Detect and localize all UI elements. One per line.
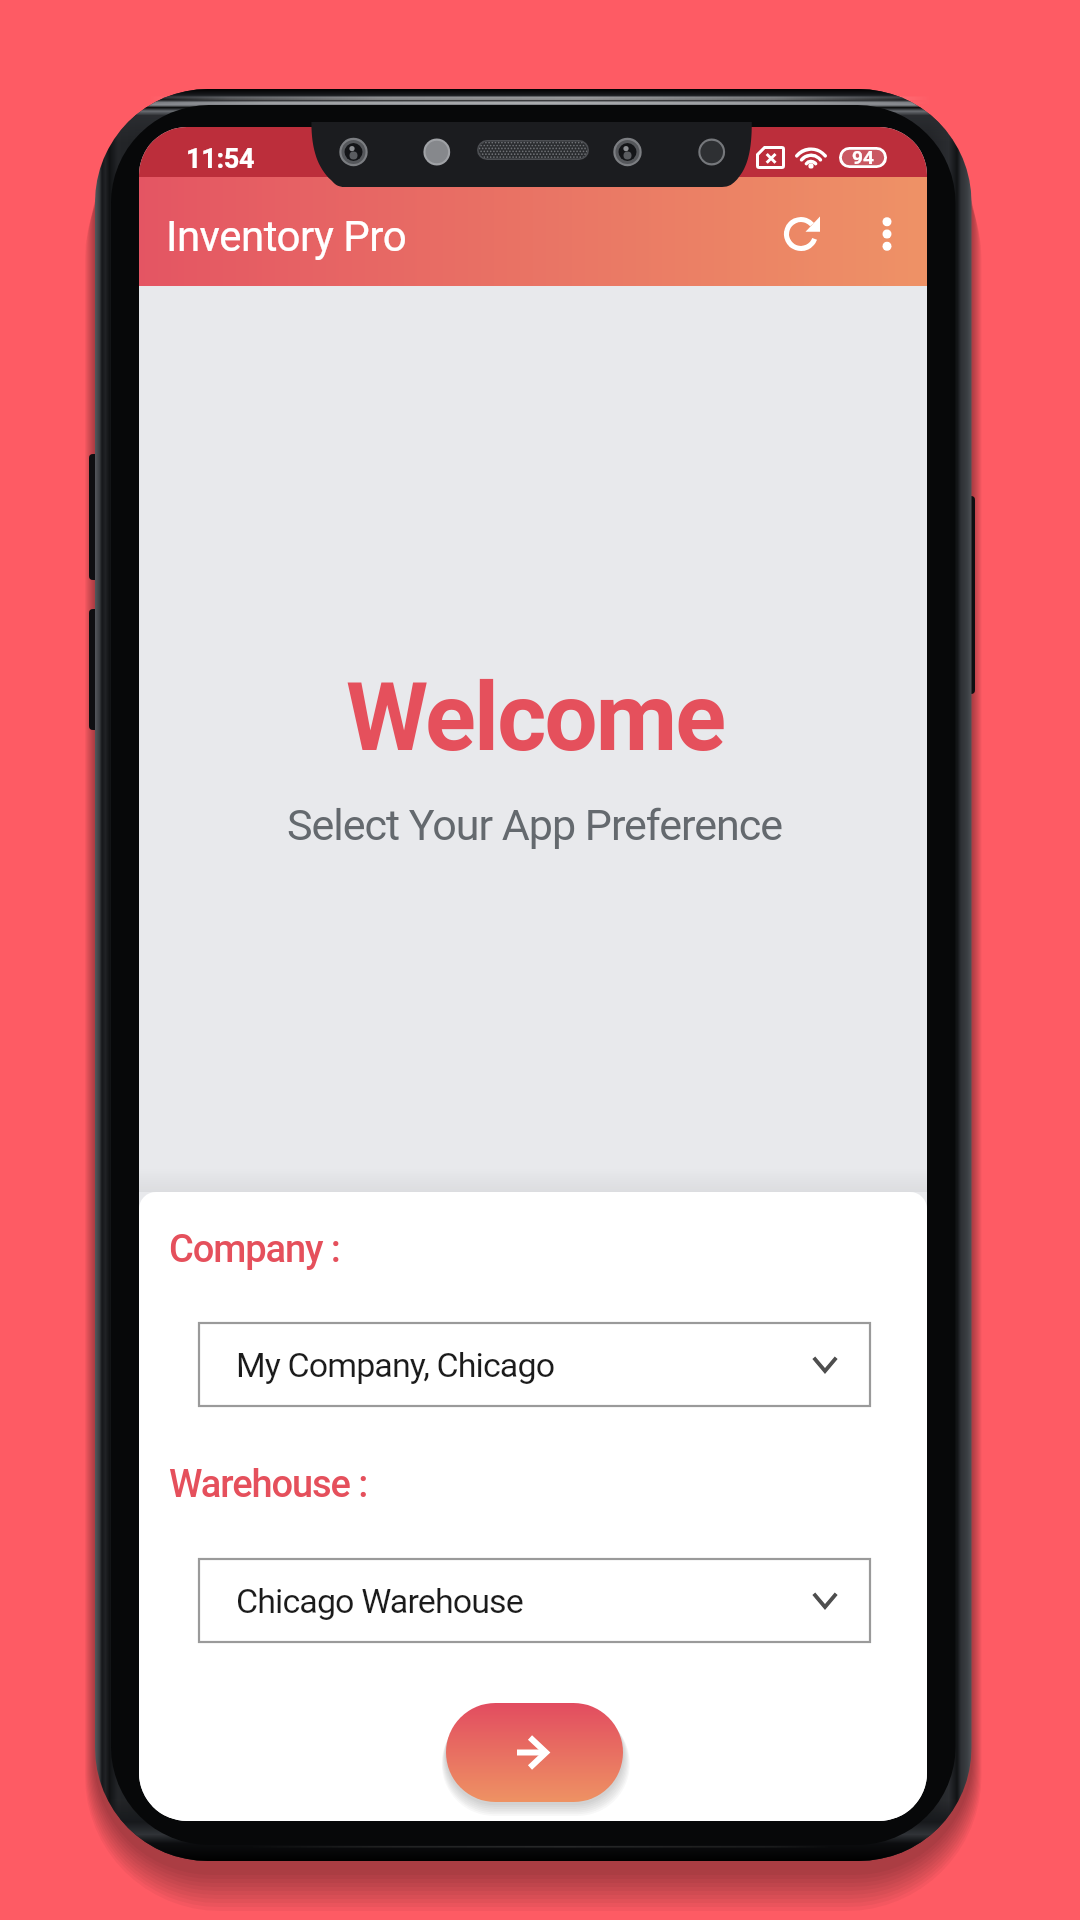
staticText: Welcome xyxy=(346,663,725,773)
staticText: Inventory Pro xyxy=(166,212,407,261)
staticText: Select Your App Preference xyxy=(287,800,783,850)
staticText: Company : xyxy=(169,1227,340,1272)
button[interactable]: My Company, Chicago xyxy=(199,1323,870,1406)
button[interactable]: Refresh xyxy=(762,191,848,277)
staticText: Chicago Warehouse xyxy=(236,1581,523,1621)
staticText: 11:54 xyxy=(186,143,255,175)
staticText: 94 xyxy=(852,146,874,167)
button[interactable]: Chicago Warehouse xyxy=(199,1559,870,1642)
button[interactable]: More options xyxy=(848,195,926,273)
staticText: Warehouse : xyxy=(169,1462,368,1507)
button[interactable]: Continue xyxy=(446,1703,623,1802)
staticText: My Company, Chicago xyxy=(236,1345,555,1385)
